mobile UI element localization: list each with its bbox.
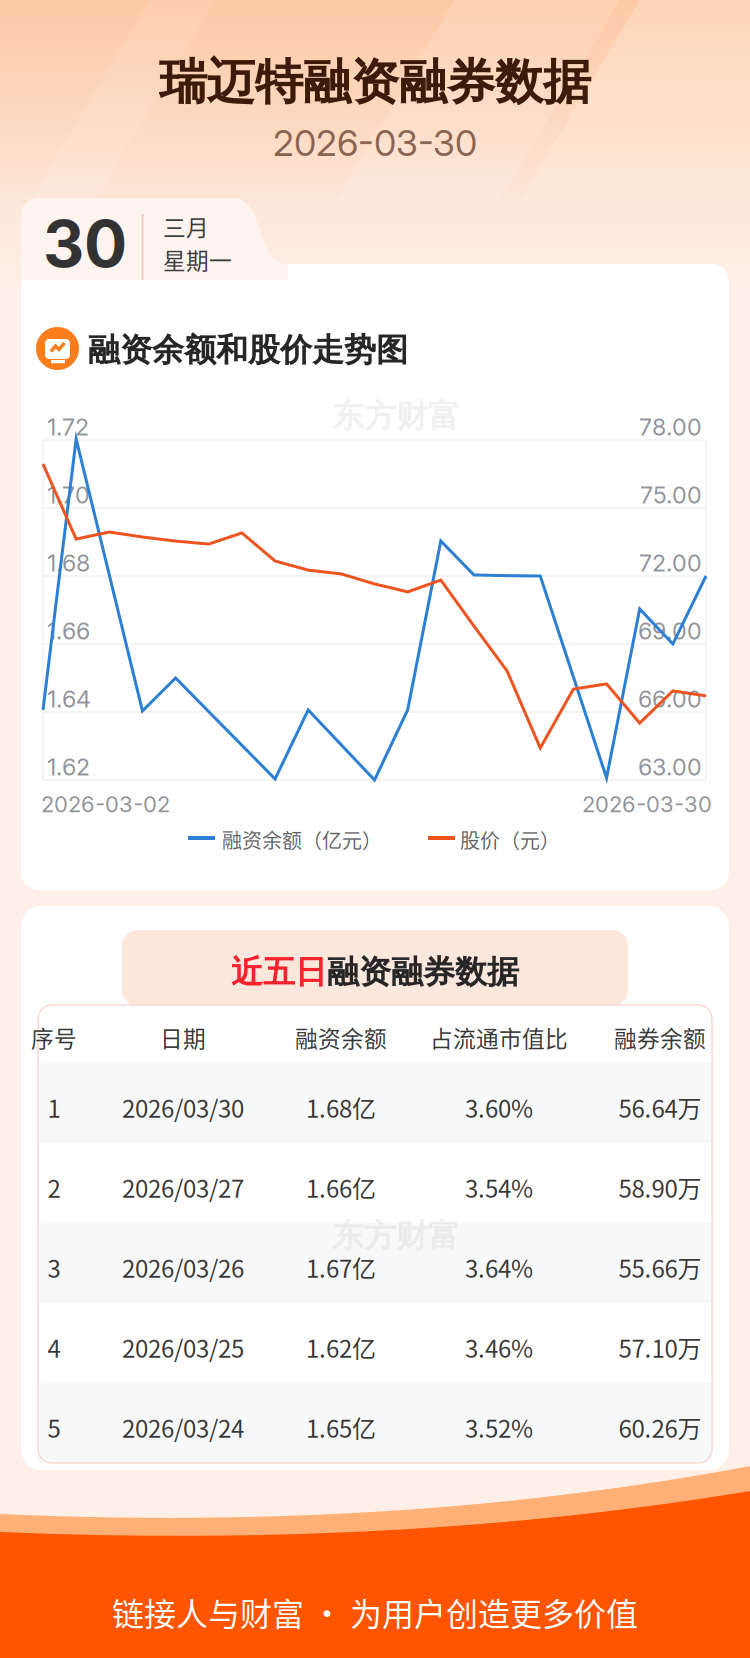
- staticText: 东方财富: [332, 396, 460, 436]
- staticText: 60.26万: [618, 1410, 701, 1445]
- staticText: 2026-03-30: [273, 121, 477, 165]
- staticText: 1.70: [47, 481, 90, 509]
- staticText: 占流通市值比: [430, 1021, 568, 1054]
- staticText: 1.65亿: [306, 1410, 376, 1445]
- staticText: 57.10万: [618, 1330, 701, 1365]
- staticText: 72.00: [639, 549, 702, 577]
- staticText: 5: [47, 1410, 60, 1445]
- staticText: 56.64万: [618, 1090, 701, 1125]
- staticText: 2026/03/25: [122, 1330, 244, 1365]
- staticText: 2026-03-02: [41, 791, 170, 818]
- staticText: 融资余额（亿元）: [222, 825, 382, 854]
- staticText: 3: [47, 1250, 60, 1285]
- staticText: 55.66万: [618, 1250, 701, 1285]
- staticText: 1.66亿: [306, 1170, 376, 1205]
- staticText: 2026/03/30: [122, 1090, 244, 1125]
- staticText: 2026/03/24: [122, 1410, 244, 1445]
- staticText: 融资余额: [295, 1021, 387, 1054]
- staticText: 1: [47, 1090, 60, 1125]
- staticText: 东方财富: [332, 1216, 460, 1256]
- staticText: 69.00: [638, 617, 702, 645]
- staticText: 3.64%: [465, 1250, 533, 1285]
- staticText: 2026/03/26: [122, 1250, 244, 1285]
- staticText: 星期一: [163, 243, 232, 276]
- staticText: 融资融券数据: [327, 952, 519, 992]
- staticText: 1.62亿: [306, 1330, 376, 1365]
- staticText: 日期: [160, 1021, 206, 1054]
- staticText: 3.46%: [465, 1330, 533, 1365]
- staticText: 瑞迈特融资融券数据: [159, 52, 591, 112]
- staticText: 三月: [163, 210, 209, 243]
- staticText: 3.60%: [465, 1090, 533, 1125]
- staticText: 1.62: [47, 753, 90, 781]
- staticText: 1.68: [47, 549, 90, 577]
- staticText: 融券余额: [614, 1021, 706, 1054]
- staticText: 1.68亿: [306, 1090, 376, 1125]
- staticText: 2026/03/27: [122, 1170, 244, 1205]
- staticText: 1.67亿: [306, 1250, 376, 1285]
- staticText: 股价（元）: [460, 825, 560, 854]
- staticText: 1.72: [47, 413, 89, 441]
- staticText: 3.54%: [465, 1170, 533, 1205]
- staticText: 融资余额和股价走势图: [88, 330, 408, 370]
- staticText: 1.64: [47, 685, 91, 713]
- staticText: 2026-03-30: [582, 791, 712, 818]
- staticText: 近五日: [231, 952, 327, 992]
- staticText: 30: [43, 205, 127, 282]
- staticText: 78.00: [639, 413, 702, 441]
- staticText: 1.66: [47, 617, 90, 645]
- staticText: 链接人与财富 · 为用户创造更多价值: [112, 1589, 638, 1635]
- staticText: 序号: [31, 1021, 77, 1054]
- staticText: 66.00: [638, 685, 702, 713]
- staticText: 58.90万: [618, 1170, 701, 1205]
- staticText: 63.00: [638, 753, 702, 781]
- staticText: 2: [47, 1170, 60, 1205]
- staticText: 3.52%: [465, 1410, 533, 1445]
- staticText: 4: [47, 1330, 60, 1365]
- staticText: 75.00: [640, 481, 702, 509]
